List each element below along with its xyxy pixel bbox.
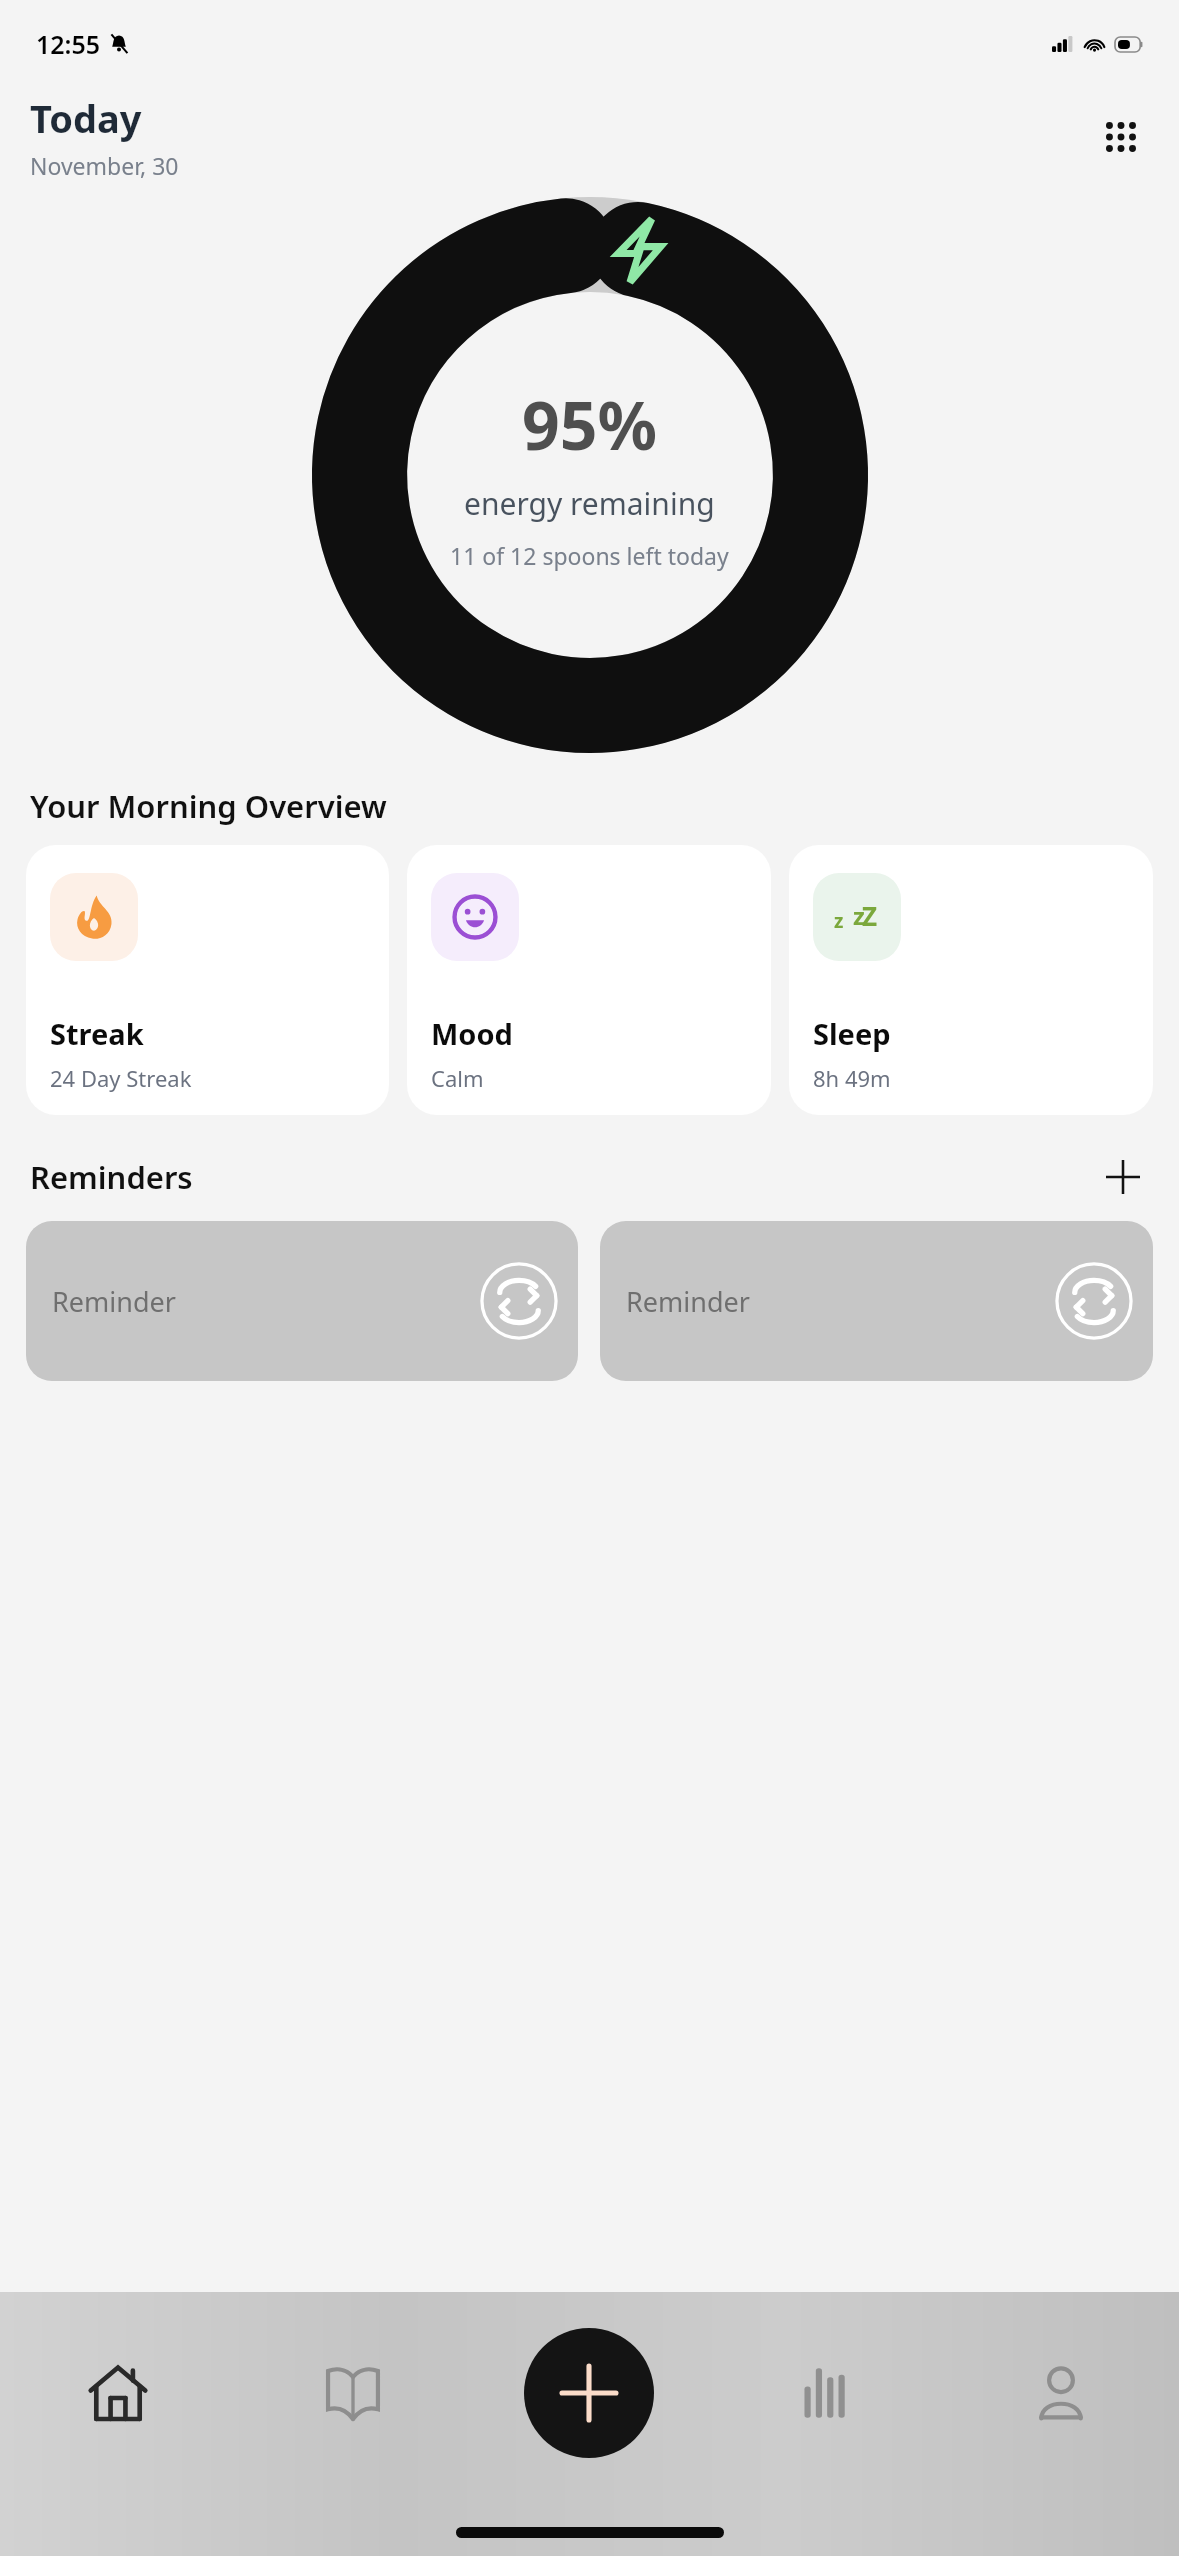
button[interactable]: Streak <box>26 845 389 1115</box>
staticText: Sleep <box>813 1014 891 1053</box>
button[interactable]: Profile <box>943 2333 1179 2453</box>
staticText: Reminder <box>626 1283 750 1320</box>
staticText: Reminder <box>52 1283 176 1320</box>
staticText: energy remaining <box>464 483 715 524</box>
staticText: Today <box>30 92 142 144</box>
staticText: Z <box>862 898 878 933</box>
staticText: 8h 49m <box>813 1063 891 1093</box>
button[interactable]: Home <box>0 2333 235 2453</box>
button[interactable]: Reminder <box>26 1221 578 1381</box>
button[interactable]: Journal <box>235 2333 471 2453</box>
button[interactable]: Reminder <box>600 1221 1153 1381</box>
staticText: Mood <box>431 1014 513 1053</box>
button[interactable]: Add reminder <box>1097 1151 1149 1203</box>
button[interactable]: Stats <box>707 2333 943 2453</box>
button[interactable]: Energy remaining 95 percent <box>312 197 868 753</box>
button[interactable]: Add entry <box>524 2328 654 2458</box>
staticText: November, 30 <box>30 150 179 181</box>
staticText: Streak <box>50 1014 144 1053</box>
staticText: 12:55 <box>36 27 101 61</box>
staticText: 11 of 12 spoons left today <box>450 540 729 571</box>
staticText: z <box>834 908 844 934</box>
button[interactable]: Apps menu <box>1093 109 1149 165</box>
button[interactable]: z <box>789 845 1153 1115</box>
staticText: Your Morning Overview <box>30 785 387 827</box>
button[interactable]: Mood <box>407 845 771 1115</box>
staticText: Calm <box>431 1063 484 1093</box>
staticText: z <box>853 899 865 932</box>
staticText: 95% <box>522 379 658 469</box>
staticText: 24 Day Streak <box>50 1063 192 1093</box>
staticText: Reminders <box>30 1156 193 1198</box>
